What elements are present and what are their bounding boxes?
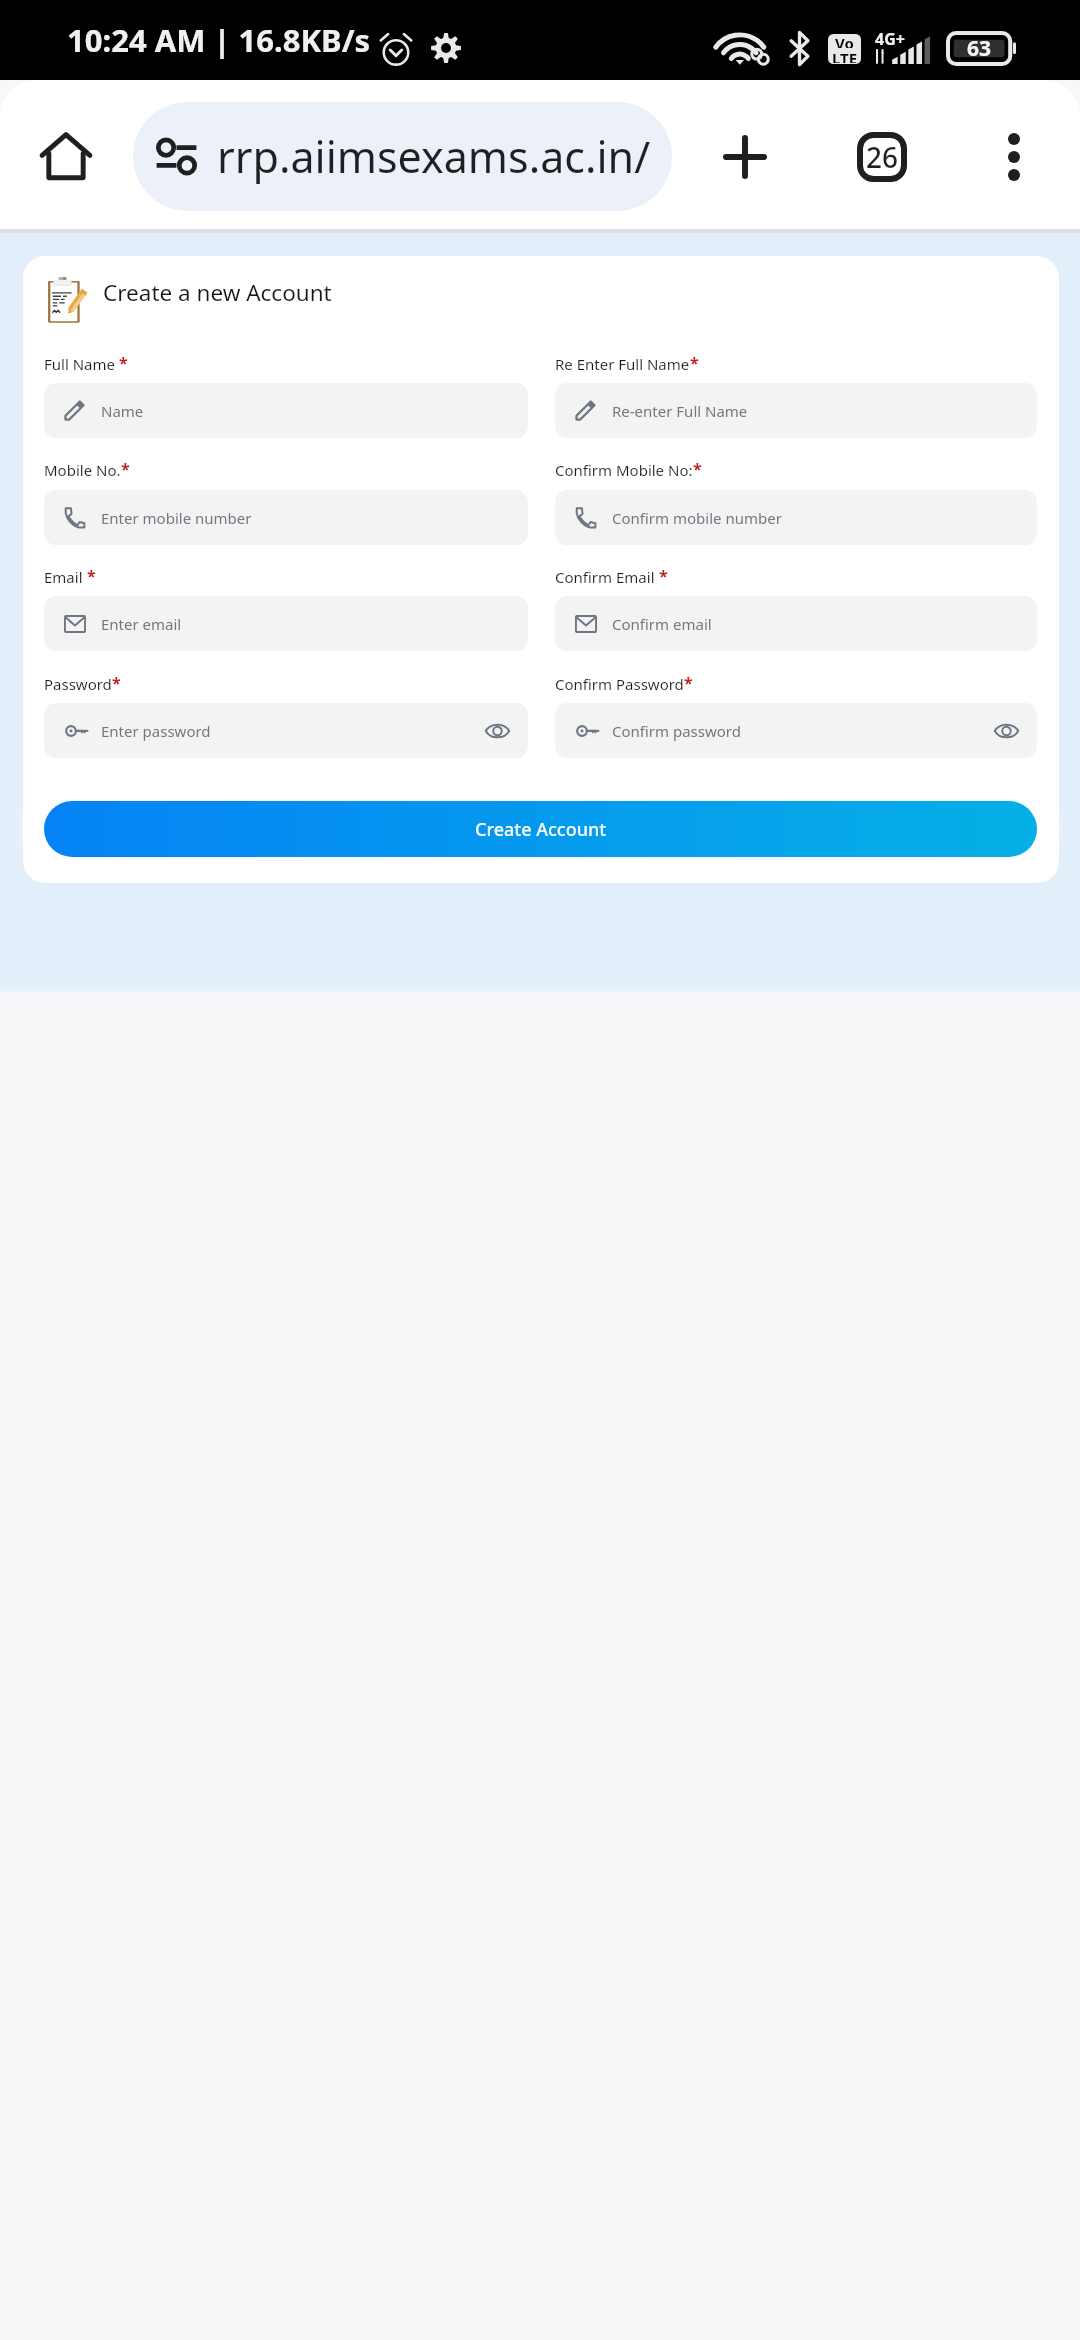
button[interactable]: Re-enter Full Name bbox=[555, 383, 1037, 438]
staticText: * bbox=[693, 458, 702, 480]
staticText: * bbox=[87, 565, 96, 587]
staticText: * bbox=[684, 672, 693, 694]
staticText: 4G+ bbox=[875, 28, 905, 50]
button[interactable]: More options bbox=[970, 113, 1058, 201]
button[interactable]: Create Account bbox=[44, 801, 1037, 857]
staticText: * bbox=[119, 352, 128, 374]
staticText: Name bbox=[101, 401, 144, 421]
staticText: * bbox=[112, 672, 121, 694]
staticText: Create Account bbox=[475, 817, 607, 842]
button[interactable]: Name bbox=[44, 383, 528, 438]
button[interactable]: Switch tabs, 26 open bbox=[837, 112, 927, 202]
staticText: Email bbox=[44, 567, 87, 587]
button[interactable]: Confirm email bbox=[555, 596, 1037, 651]
button[interactable]: Home bbox=[22, 113, 110, 201]
button[interactable]: rrp.aiimsexams.ac.in/ bbox=[133, 102, 672, 211]
button[interactable]: Show password bbox=[481, 715, 513, 747]
staticText: Enter email bbox=[101, 614, 182, 634]
staticText: * bbox=[659, 565, 668, 587]
staticText: Confirm mobile number bbox=[612, 508, 782, 528]
staticText: Confirm password bbox=[612, 721, 741, 741]
staticText: LTE bbox=[832, 48, 858, 63]
staticText: Re-enter Full Name bbox=[612, 401, 748, 421]
staticText: Full Name bbox=[44, 354, 119, 374]
button[interactable]: Show password bbox=[990, 715, 1022, 747]
staticText: 63 bbox=[967, 34, 992, 63]
button[interactable]: Confirm password bbox=[555, 703, 1037, 758]
button[interactable]: Enter password bbox=[44, 703, 528, 758]
staticText: * bbox=[690, 352, 699, 374]
button[interactable]: Enter mobile number bbox=[44, 490, 528, 545]
staticText: Re Enter Full Name bbox=[555, 354, 690, 374]
button[interactable]: Confirm mobile number bbox=[555, 490, 1037, 545]
button[interactable]: Enter email bbox=[44, 596, 528, 651]
staticText: Mobile No. bbox=[44, 460, 121, 480]
staticText: Confirm Mobile No: bbox=[555, 460, 693, 480]
staticText: rrp.aiimsexams.ac.in/ bbox=[217, 127, 651, 186]
staticText: Create a new Account bbox=[103, 277, 332, 308]
staticText: * bbox=[121, 458, 130, 480]
staticText: Enter mobile number bbox=[101, 508, 252, 528]
staticText: Password bbox=[44, 674, 112, 694]
staticText: 26 bbox=[866, 138, 899, 176]
staticText: Vo bbox=[835, 33, 854, 48]
staticText: Enter password bbox=[101, 721, 211, 741]
staticText: Confirm email bbox=[612, 614, 712, 634]
staticText: Confirm Password bbox=[555, 674, 684, 694]
staticText: 10:24 AM | 16.8KB/s bbox=[67, 19, 371, 61]
staticText: Confirm Email bbox=[555, 567, 659, 587]
button[interactable]: New tab bbox=[700, 112, 790, 202]
